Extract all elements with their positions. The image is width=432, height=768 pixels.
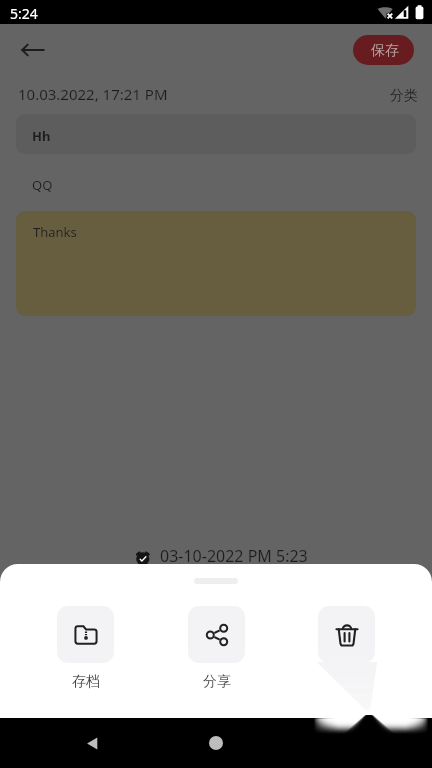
button[interactable]: 分类 (390, 87, 418, 105)
other: Reminder (134, 548, 150, 566)
staticText: 10.03.2022, 17:21 PM (18, 84, 168, 104)
staticText: 分类 (390, 87, 418, 105)
staticText: 保存 (371, 42, 399, 60)
staticText: 存档 (72, 673, 100, 691)
staticText: Hh (32, 127, 51, 145)
button[interactable]: Delete (318, 606, 375, 663)
staticText: 分享 (203, 673, 231, 691)
button[interactable]: 保存 (353, 35, 414, 65)
staticText: Thanks (33, 223, 77, 241)
staticText: QQ (32, 176, 53, 194)
other: Share (205, 623, 229, 647)
button[interactable]: Share (188, 606, 245, 691)
button[interactable]: Back (9, 26, 57, 74)
button[interactable]: Back (72, 723, 112, 763)
button[interactable]: Archive (57, 606, 114, 691)
staticText: 03-10-2022 PM 5:23 (160, 545, 308, 567)
staticText: 5:24 (10, 4, 38, 23)
button[interactable]: Home (196, 723, 236, 763)
other: Archive (74, 623, 98, 647)
button[interactable]: Hh (16, 114, 416, 154)
button[interactable]: Reminder (134, 546, 308, 568)
other: Delete (335, 623, 359, 647)
